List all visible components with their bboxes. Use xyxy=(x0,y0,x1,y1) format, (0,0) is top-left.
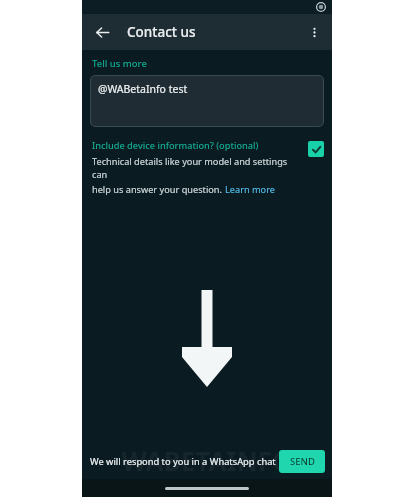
staticText: Tell us more xyxy=(92,57,147,70)
staticText: Learn more xyxy=(225,183,275,196)
button[interactable]: Back xyxy=(88,18,116,46)
staticText: WABETAINFO xyxy=(121,443,293,478)
staticText: Contact us xyxy=(127,23,196,41)
button[interactable]: More options xyxy=(301,19,327,45)
button[interactable]: Include device information? (optional) xyxy=(82,139,332,196)
staticText: SEND xyxy=(290,455,315,468)
staticText: help us answer your question. xyxy=(92,183,225,196)
staticText: We will respond to you in a WhatsApp cha… xyxy=(90,455,276,468)
staticText: Include device information? (optional) xyxy=(92,139,259,152)
staticText: @WABetaInfo test xyxy=(98,82,188,96)
staticText: Technical details like your model and se… xyxy=(92,155,302,181)
button[interactable]: @WABetaInfo test xyxy=(90,75,324,127)
button[interactable]: SEND xyxy=(279,450,325,473)
button[interactable]: Include device information xyxy=(308,141,324,157)
